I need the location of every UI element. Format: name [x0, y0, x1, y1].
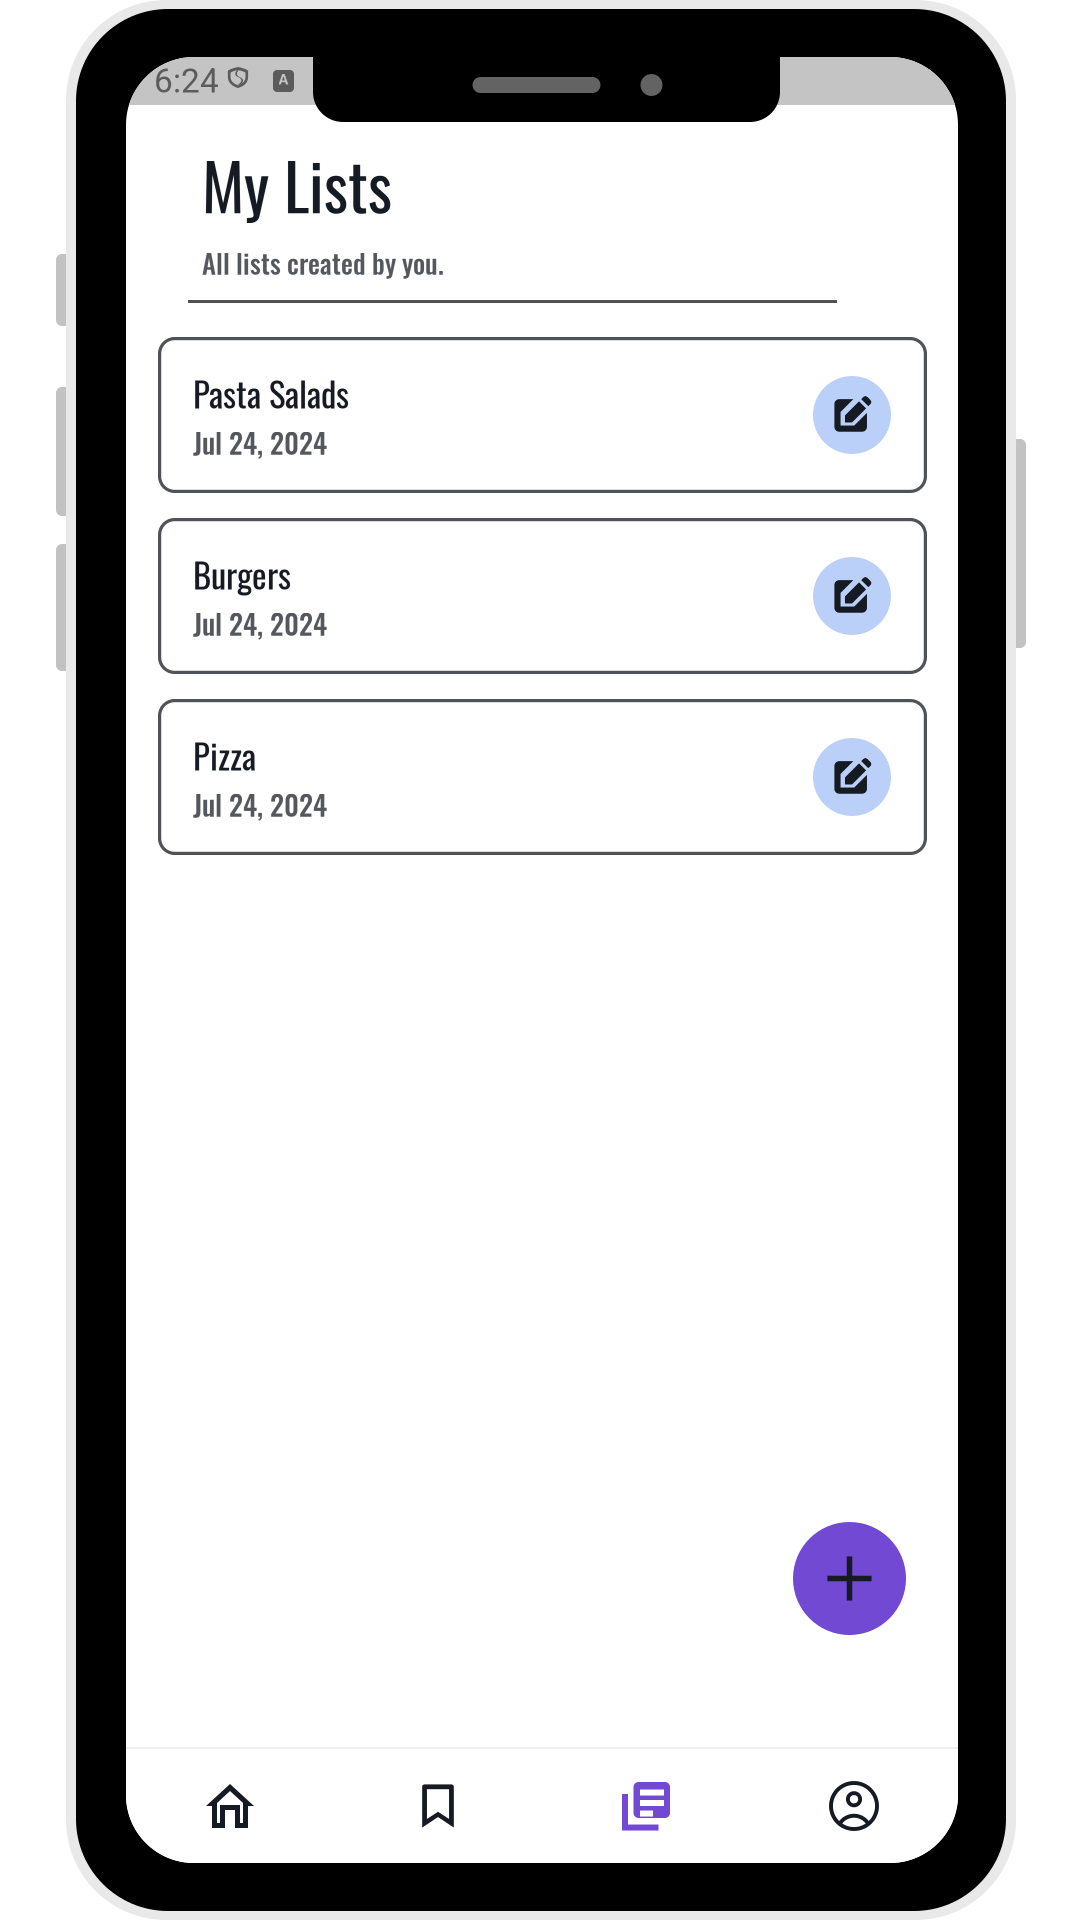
button[interactable]: Bookmarks — [334, 1748, 542, 1864]
staticText: 6:24 — [154, 61, 219, 101]
staticText: Pizza — [193, 729, 256, 780]
staticText: A — [278, 71, 288, 88]
button[interactable]: Pizza — [158, 699, 927, 855]
button[interactable]: Add list — [793, 1522, 906, 1635]
staticText: Pasta Salads — [193, 367, 349, 418]
button[interactable]: Home — [126, 1748, 334, 1864]
button[interactable]: Burgers — [158, 518, 927, 674]
staticText: Jul 24, 2024 — [193, 602, 327, 644]
button[interactable]: Edit list — [813, 738, 891, 816]
staticText: Burgers — [193, 548, 291, 599]
button[interactable]: Pasta Salads — [158, 337, 927, 493]
button[interactable]: Edit list — [813, 557, 891, 635]
staticText: All lists created by you. — [202, 243, 444, 282]
button[interactable]: Profile — [750, 1748, 958, 1864]
staticText: Jul 24, 2024 — [193, 783, 327, 825]
staticText: Jul 24, 2024 — [193, 421, 327, 463]
staticText: My Lists — [202, 137, 392, 232]
button[interactable]: Lists — [542, 1748, 750, 1864]
button[interactable]: Edit list — [813, 376, 891, 454]
